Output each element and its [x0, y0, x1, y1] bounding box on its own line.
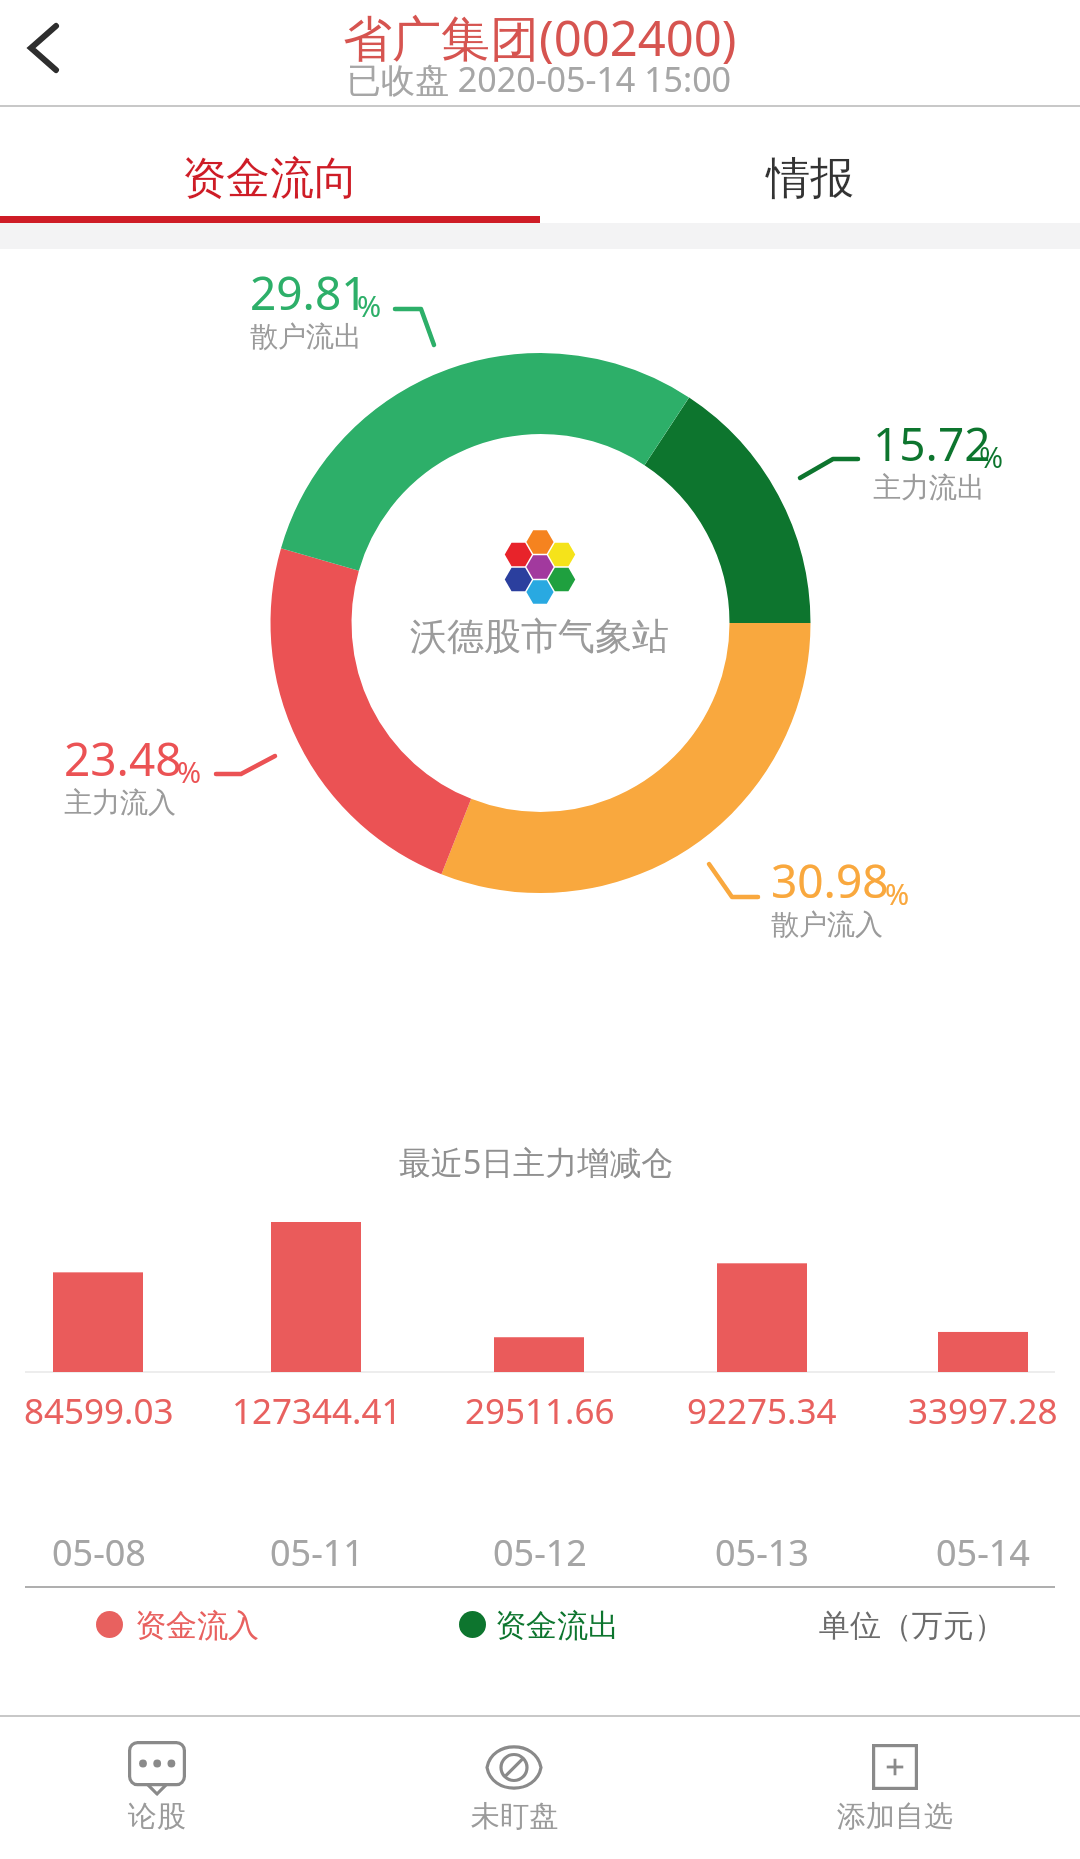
button[interactable]: 添加自选	[785, 1736, 1005, 1846]
staticText: 主力流出	[873, 470, 985, 505]
button[interactable]: 情报	[540, 106, 1080, 222]
staticText: 05-12	[493, 1528, 587, 1577]
staticText: %	[357, 286, 382, 325]
staticText: 散户流出	[250, 319, 362, 354]
staticText: 84599.03	[24, 1387, 174, 1435]
staticText: 29511.66	[465, 1387, 615, 1435]
staticText: %	[177, 752, 202, 791]
staticText: 29.81	[250, 261, 368, 324]
staticText: 主力流入	[64, 785, 176, 820]
staticText: 127344.41	[232, 1387, 402, 1435]
staticText: 23.48	[64, 727, 182, 790]
staticText: 论股	[128, 1798, 186, 1835]
staticText: 散户流入	[771, 907, 883, 942]
button[interactable]: 资金流向	[0, 106, 540, 222]
staticText: 15.72	[873, 412, 991, 475]
staticText: 单位（万元）	[819, 1606, 1005, 1645]
staticText: 沃德股市气象站	[410, 613, 669, 660]
button[interactable]: 论股	[47, 1736, 267, 1846]
staticText: 添加自选	[837, 1798, 953, 1835]
staticText: 未盯盘	[471, 1798, 558, 1835]
staticText: 已收盘 2020-05-14 15:00	[347, 56, 732, 102]
staticText: 33997.28	[908, 1387, 1058, 1435]
staticText: 最近5日主力增减仓	[399, 1140, 674, 1184]
button[interactable]: 未盯盘	[404, 1736, 624, 1846]
staticText: 情报	[766, 151, 854, 206]
staticText: 92275.34	[687, 1387, 837, 1435]
button[interactable]: Back	[0, 0, 112, 104]
staticText: 05-14	[936, 1528, 1030, 1577]
staticText: 资金流向	[182, 151, 358, 206]
staticText: 省广集团(002400)	[343, 4, 737, 71]
staticText: 资金流入	[135, 1606, 259, 1645]
staticText: %	[979, 437, 1004, 476]
staticText: 05-08	[52, 1528, 146, 1577]
staticText: 05-13	[715, 1528, 809, 1577]
staticText: %	[885, 874, 910, 913]
staticText: 05-11	[270, 1528, 364, 1577]
staticText: 30.98	[771, 849, 889, 912]
staticText: 资金流出	[495, 1606, 619, 1645]
